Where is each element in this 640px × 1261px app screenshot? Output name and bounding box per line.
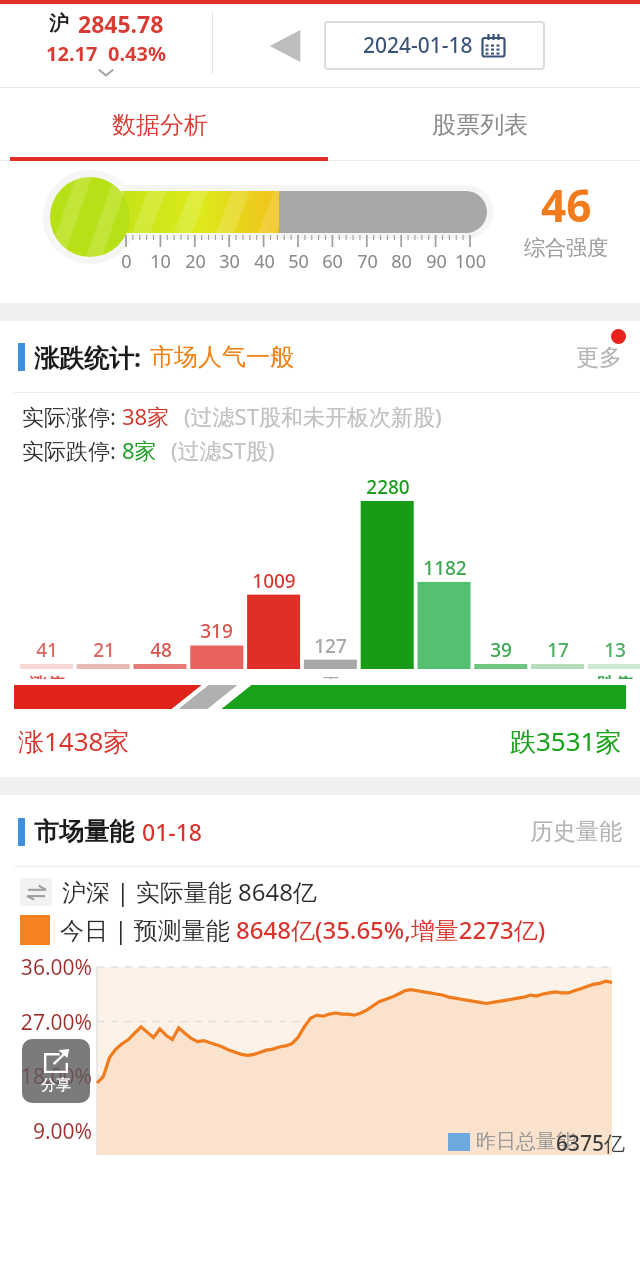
staticText: 39: [490, 637, 512, 663]
staticText: 市场人气一般: [150, 342, 294, 372]
button[interactable]: 历史量能: [530, 817, 622, 846]
staticText: 2280: [366, 474, 410, 500]
staticText: 13: [604, 637, 626, 663]
staticText: 2~5%: [422, 674, 468, 699]
staticText: 12.17: [46, 40, 98, 67]
staticText: 18.00%: [20, 1062, 92, 1091]
staticText: 20: [185, 249, 206, 274]
staticText: 昨日总量能: [476, 1129, 576, 1154]
staticText: 10: [150, 249, 171, 274]
staticText: 0~2%: [365, 674, 411, 699]
staticText: 70: [357, 249, 378, 274]
staticText: 涨停: [29, 674, 65, 697]
staticText: 80: [391, 249, 412, 274]
staticText: 数据分析: [112, 110, 208, 140]
staticText: 27.00%: [20, 1008, 92, 1037]
staticText: (过滤ST股): [171, 435, 275, 465]
button[interactable]: Toggle actual volume: [20, 875, 317, 908]
staticText: 沪: [49, 11, 69, 36]
button[interactable]: 股票列表: [320, 88, 640, 161]
staticText: >7%: [86, 674, 122, 699]
staticText: 46: [541, 175, 592, 235]
staticText: 涨1438家: [18, 723, 130, 759]
staticText: 平: [322, 674, 340, 697]
staticText: 7%<: [540, 674, 576, 699]
staticText: 0: [121, 249, 132, 274]
staticText: (过滤ST股和未开板次新股): [184, 401, 442, 431]
staticText: 沪深 | 实际量能 8648亿: [62, 875, 317, 908]
staticText: 100: [455, 249, 486, 274]
staticText: 市场量能: [34, 816, 134, 847]
staticText: 50: [288, 249, 309, 274]
button[interactable]: 沪: [0, 4, 212, 87]
staticText: 319: [200, 618, 233, 644]
button[interactable]: 数据分析: [0, 88, 320, 161]
button[interactable]: 2024-01-18: [325, 22, 544, 69]
staticText: 7~5%: [138, 674, 184, 699]
staticText: 综合强度: [524, 235, 608, 261]
staticText: 2~0%: [251, 674, 297, 699]
staticText: 5~2%: [194, 674, 240, 699]
staticText: 9.00%: [32, 1117, 92, 1146]
staticText: 分享: [41, 1076, 71, 1095]
staticText: 38家: [122, 401, 170, 431]
staticText: 1182: [423, 555, 467, 581]
staticText: 8648亿(35.65%,增量2273亿): [236, 913, 546, 946]
staticText: 36.00%: [20, 953, 92, 982]
staticText: 跌3531家: [510, 723, 622, 759]
staticText: 历史量能: [530, 817, 622, 846]
staticText: 1009: [252, 568, 296, 594]
staticText: 21: [93, 637, 115, 663]
staticText: 40: [254, 249, 275, 274]
other: Toggle actual volume: [20, 878, 52, 906]
staticText: 股票列表: [432, 110, 528, 140]
staticText: 17: [547, 637, 569, 663]
staticText: 01-18: [142, 816, 203, 847]
staticText: 60: [322, 249, 343, 274]
staticText: 8家: [122, 435, 157, 465]
staticText: 实际跌停:: [22, 435, 122, 465]
staticText: 48: [150, 637, 172, 663]
staticText: 0.43%: [108, 40, 166, 67]
staticText: 2024-01-18: [363, 31, 473, 60]
staticText: 涨跌统计:: [34, 340, 142, 374]
button[interactable]: 今日 | 预测量能: [20, 913, 546, 946]
button[interactable]: Previous day: [256, 18, 314, 74]
staticText: 5~7%: [478, 674, 524, 699]
staticText: 6375亿: [556, 1129, 626, 1158]
staticText: 跌停: [597, 674, 633, 697]
staticText: 今日 | 预测量能: [60, 913, 236, 946]
staticText: 30: [219, 249, 240, 274]
staticText: 实际涨停:: [22, 401, 122, 431]
staticText: 90: [426, 249, 447, 274]
staticText: 127: [314, 633, 347, 659]
staticText: 41: [36, 637, 58, 663]
button[interactable]: 更多: [576, 343, 622, 372]
button[interactable]: Share: [22, 1039, 90, 1103]
staticText: 更多: [576, 343, 622, 372]
staticText: 2845.78: [78, 8, 164, 39]
